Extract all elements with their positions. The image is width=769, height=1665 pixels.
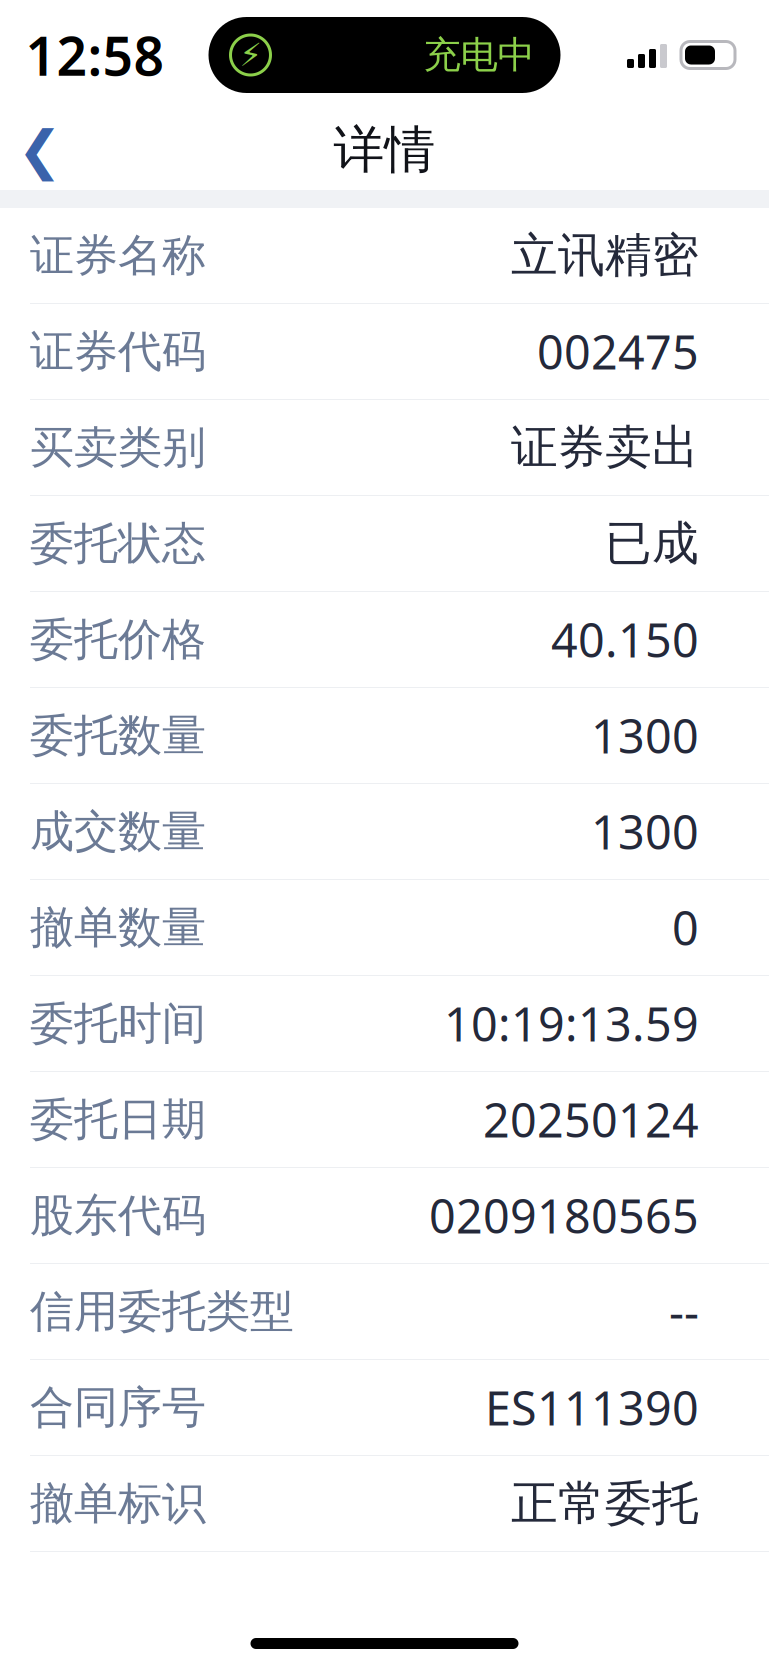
staticText: 证券代码	[30, 324, 206, 378]
staticText: 立讯精密	[511, 227, 699, 284]
staticText: 证券名称	[30, 228, 206, 282]
staticText: 委托价格	[30, 612, 206, 666]
staticText: 正常委托	[511, 1475, 699, 1532]
staticText: 委托时间	[30, 996, 206, 1050]
staticText: 已成	[605, 515, 699, 572]
staticText: 0209180565	[429, 1184, 699, 1246]
staticText: 详情	[333, 119, 435, 181]
staticText: --	[669, 1280, 699, 1342]
staticText: 充电中	[423, 32, 534, 78]
button[interactable]: 返回	[0, 110, 80, 190]
staticText: 10:19:13.59	[444, 992, 699, 1054]
staticText: 股东代码	[30, 1188, 206, 1242]
staticText: ES111390	[485, 1376, 699, 1438]
staticText: 002475	[537, 320, 699, 382]
staticText: 0	[672, 896, 699, 958]
staticText: 12:58	[25, 20, 164, 90]
staticText: 信用委托类型	[30, 1284, 294, 1338]
staticText: 1300	[591, 704, 699, 766]
staticText: 合同序号	[30, 1380, 206, 1434]
staticText: 撤单标识	[30, 1476, 206, 1530]
staticText: 撤单数量	[30, 900, 206, 954]
staticText: 委托日期	[30, 1092, 206, 1146]
staticText: 20250124	[483, 1088, 699, 1150]
staticText: 委托数量	[30, 708, 206, 762]
staticText: 40.150	[551, 608, 699, 670]
staticText: 委托状态	[30, 516, 206, 570]
staticText: 1300	[591, 800, 699, 862]
staticText: 证券卖出	[511, 419, 699, 476]
staticText: ⚡︎	[239, 37, 261, 73]
staticText: ❮	[17, 120, 62, 180]
staticText: 买卖类别	[30, 420, 206, 474]
staticText: 成交数量	[30, 804, 206, 858]
